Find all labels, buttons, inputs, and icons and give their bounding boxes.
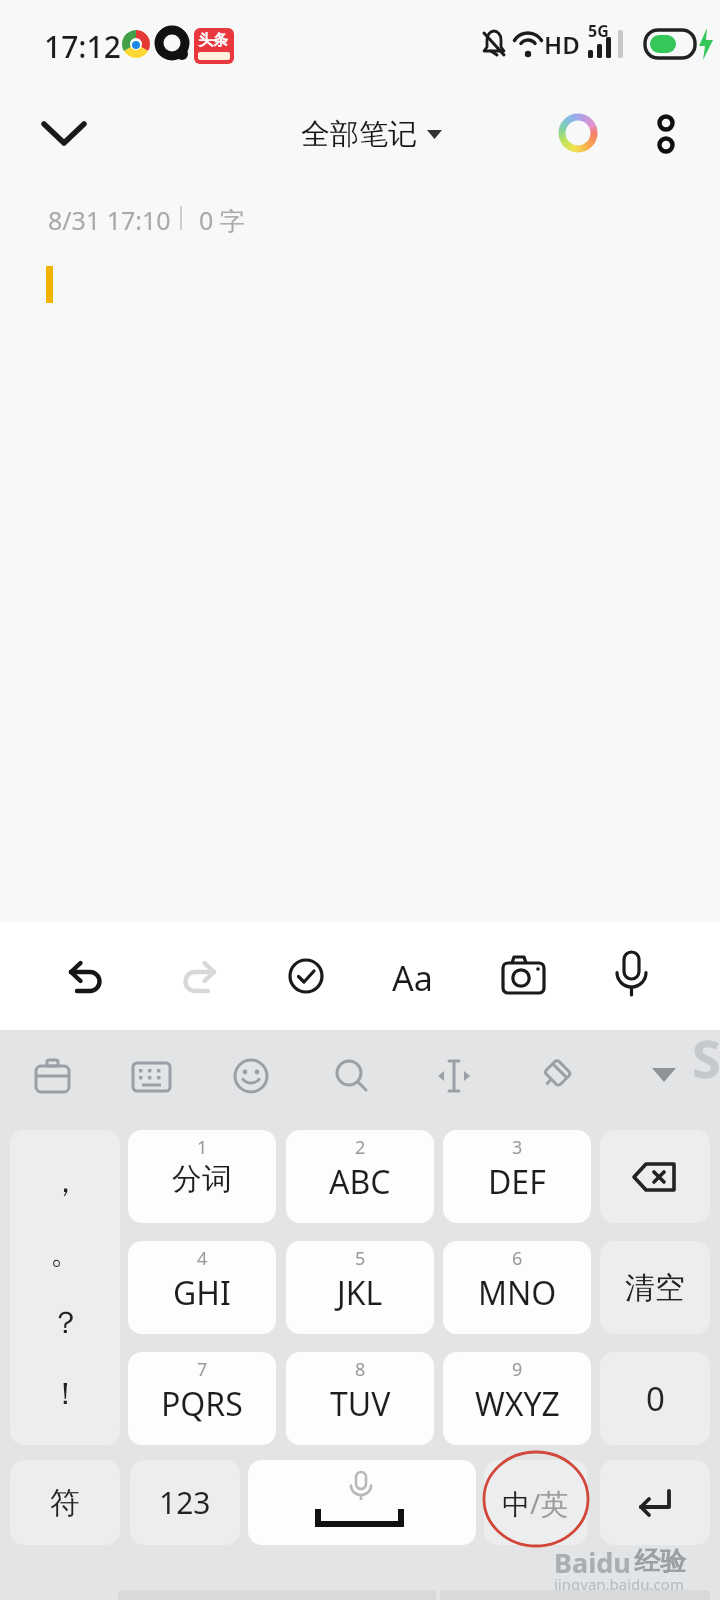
staticText: Baidu (554, 1544, 631, 1581)
button[interactable] (42, 120, 88, 150)
staticText: MNO (478, 1271, 557, 1315)
button[interactable] (288, 958, 324, 994)
staticText: 分词 (172, 1160, 232, 1198)
staticText: 2 (355, 1135, 366, 1160)
button[interactable] (248, 1460, 476, 1545)
staticText: ABC (329, 1160, 391, 1204)
staticText: HD (544, 28, 580, 61)
button[interactable] (650, 1066, 680, 1086)
staticText: 3 (512, 1135, 523, 1160)
staticText: jingyan.baidu.com (554, 1574, 684, 1594)
staticText: 头条 (198, 31, 228, 50)
button[interactable]: 9 (443, 1352, 591, 1445)
staticText: 经验 (634, 1545, 686, 1578)
button[interactable]: 1 (128, 1130, 276, 1223)
staticText: 8/31 17:10 (48, 203, 171, 237)
staticText: ， (50, 1162, 81, 1201)
staticText: 中/英 (502, 1484, 569, 1522)
staticText: 5 (355, 1246, 366, 1271)
staticText: 。 (50, 1233, 81, 1272)
staticText: 17:12 (44, 26, 121, 67)
button[interactable] (612, 950, 652, 1002)
staticText: 1 (197, 1135, 208, 1160)
button[interactable]: 中/英 (484, 1460, 587, 1545)
button[interactable] (34, 1056, 74, 1096)
button[interactable]: 4 (128, 1241, 276, 1334)
button[interactable] (332, 1056, 372, 1096)
staticText: PQRS (161, 1382, 243, 1426)
button[interactable]: ， (10, 1130, 120, 1445)
staticText: 6 (512, 1246, 523, 1271)
button[interactable] (650, 112, 682, 158)
staticText: Aa (392, 955, 433, 1001)
staticText: S (692, 1022, 720, 1093)
staticText: 7 (197, 1357, 208, 1382)
staticText: ？ (50, 1303, 81, 1342)
staticText: TUV (330, 1382, 391, 1426)
button[interactable]: 清空 (600, 1241, 710, 1334)
staticText: 8 (355, 1357, 366, 1382)
button[interactable] (432, 1056, 476, 1100)
staticText: DEF (488, 1160, 546, 1204)
staticText: 全部笔记 (301, 116, 417, 153)
button[interactable]: 8 (286, 1352, 434, 1445)
button[interactable]: 7 (128, 1352, 276, 1445)
staticText: 清空 (625, 1269, 685, 1307)
staticText: 123 (159, 1482, 211, 1523)
staticText: JKL (337, 1271, 383, 1315)
button[interactable]: 0 (600, 1352, 710, 1445)
button[interactable]: 5 (286, 1241, 434, 1334)
staticText: 4 (197, 1246, 208, 1271)
button[interactable] (500, 952, 548, 1000)
staticText: GHI (173, 1271, 231, 1315)
button[interactable] (232, 1056, 272, 1096)
button[interactable]: 123 (130, 1460, 240, 1545)
staticText: 5G (588, 20, 609, 42)
button[interactable] (600, 1460, 710, 1545)
staticText: ！ (50, 1374, 81, 1413)
button[interactable]: 2 (286, 1130, 434, 1223)
staticText: 符 (50, 1484, 80, 1522)
button[interactable] (600, 1130, 710, 1223)
button[interactable] (173, 950, 221, 998)
button[interactable]: 全部笔记 (301, 116, 442, 153)
button[interactable]: 符 (10, 1460, 120, 1545)
button[interactable]: 3 (443, 1130, 591, 1223)
button[interactable]: 6 (443, 1241, 591, 1334)
staticText: 0 (646, 1376, 665, 1421)
button[interactable] (558, 113, 598, 153)
staticText: 9 (512, 1357, 523, 1382)
button[interactable] (64, 950, 112, 998)
button[interactable] (132, 1058, 172, 1098)
staticText: WXYZ (475, 1382, 560, 1426)
staticText: 0 字 (199, 203, 245, 237)
button[interactable] (538, 1056, 578, 1096)
